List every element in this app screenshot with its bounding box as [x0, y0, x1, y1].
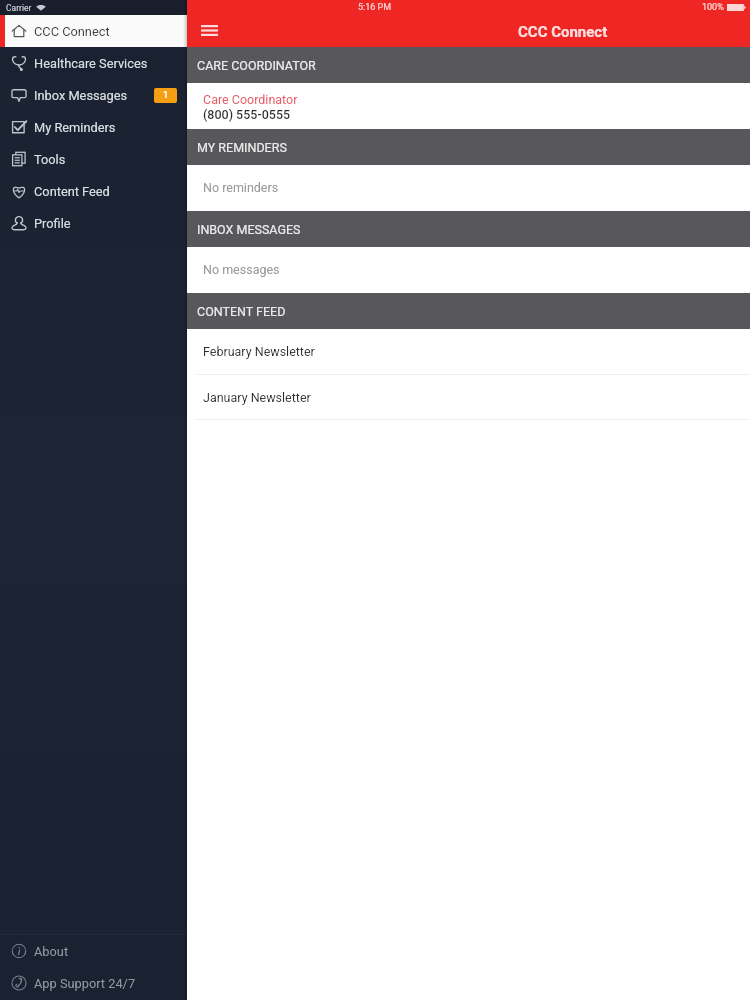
- staticText: (800) 555-0555: [203, 107, 291, 122]
- staticText: CARE COORDINATOR: [197, 58, 316, 73]
- button[interactable]: My Reminders: [0, 111, 187, 143]
- staticText: My Reminders: [34, 120, 116, 135]
- button[interactable]: Open navigation menu: [189, 11, 229, 49]
- staticText: Tools: [34, 152, 66, 167]
- staticText: About: [34, 944, 69, 959]
- button[interactable]: Tools: [0, 143, 187, 175]
- staticText: Healthcare Services: [34, 56, 148, 71]
- staticText: CONTENT FEED: [197, 304, 286, 319]
- staticText: CCC Connect: [34, 24, 110, 39]
- button[interactable]: App Support 24/7: [0, 967, 187, 999]
- button[interactable]: Care Coordinator: [0, 83, 750, 129]
- staticText: Carrier: [6, 3, 32, 13]
- staticText: No messages: [203, 262, 280, 277]
- button[interactable]: February Newsletter: [0, 329, 750, 375]
- staticText: Inbox Messages: [34, 88, 128, 103]
- staticText: 100%: [702, 2, 724, 13]
- button[interactable]: Content Feed: [0, 175, 187, 207]
- button[interactable]: CCC Connect: [0, 15, 187, 47]
- staticText: 1: [163, 90, 169, 101]
- staticText: Care Coordinator: [203, 92, 298, 107]
- staticText: CCC Connect: [518, 23, 608, 41]
- button[interactable]: About: [0, 935, 187, 967]
- staticText: Profile: [34, 216, 71, 231]
- staticText: INBOX MESSAGES: [197, 222, 301, 237]
- staticText: Content Feed: [34, 184, 110, 199]
- button[interactable]: January Newsletter: [0, 375, 750, 420]
- button[interactable]: Inbox Messages: [0, 79, 187, 111]
- staticText: January Newsletter: [203, 390, 311, 405]
- staticText: App Support 24/7: [34, 976, 136, 991]
- staticText: 5:16 PM: [358, 2, 392, 13]
- button[interactable]: Profile: [0, 207, 187, 239]
- staticText: No reminders: [203, 180, 279, 195]
- staticText: MY REMINDERS: [197, 140, 287, 155]
- staticText: February Newsletter: [203, 344, 315, 359]
- button[interactable]: Healthcare Services: [0, 47, 187, 79]
